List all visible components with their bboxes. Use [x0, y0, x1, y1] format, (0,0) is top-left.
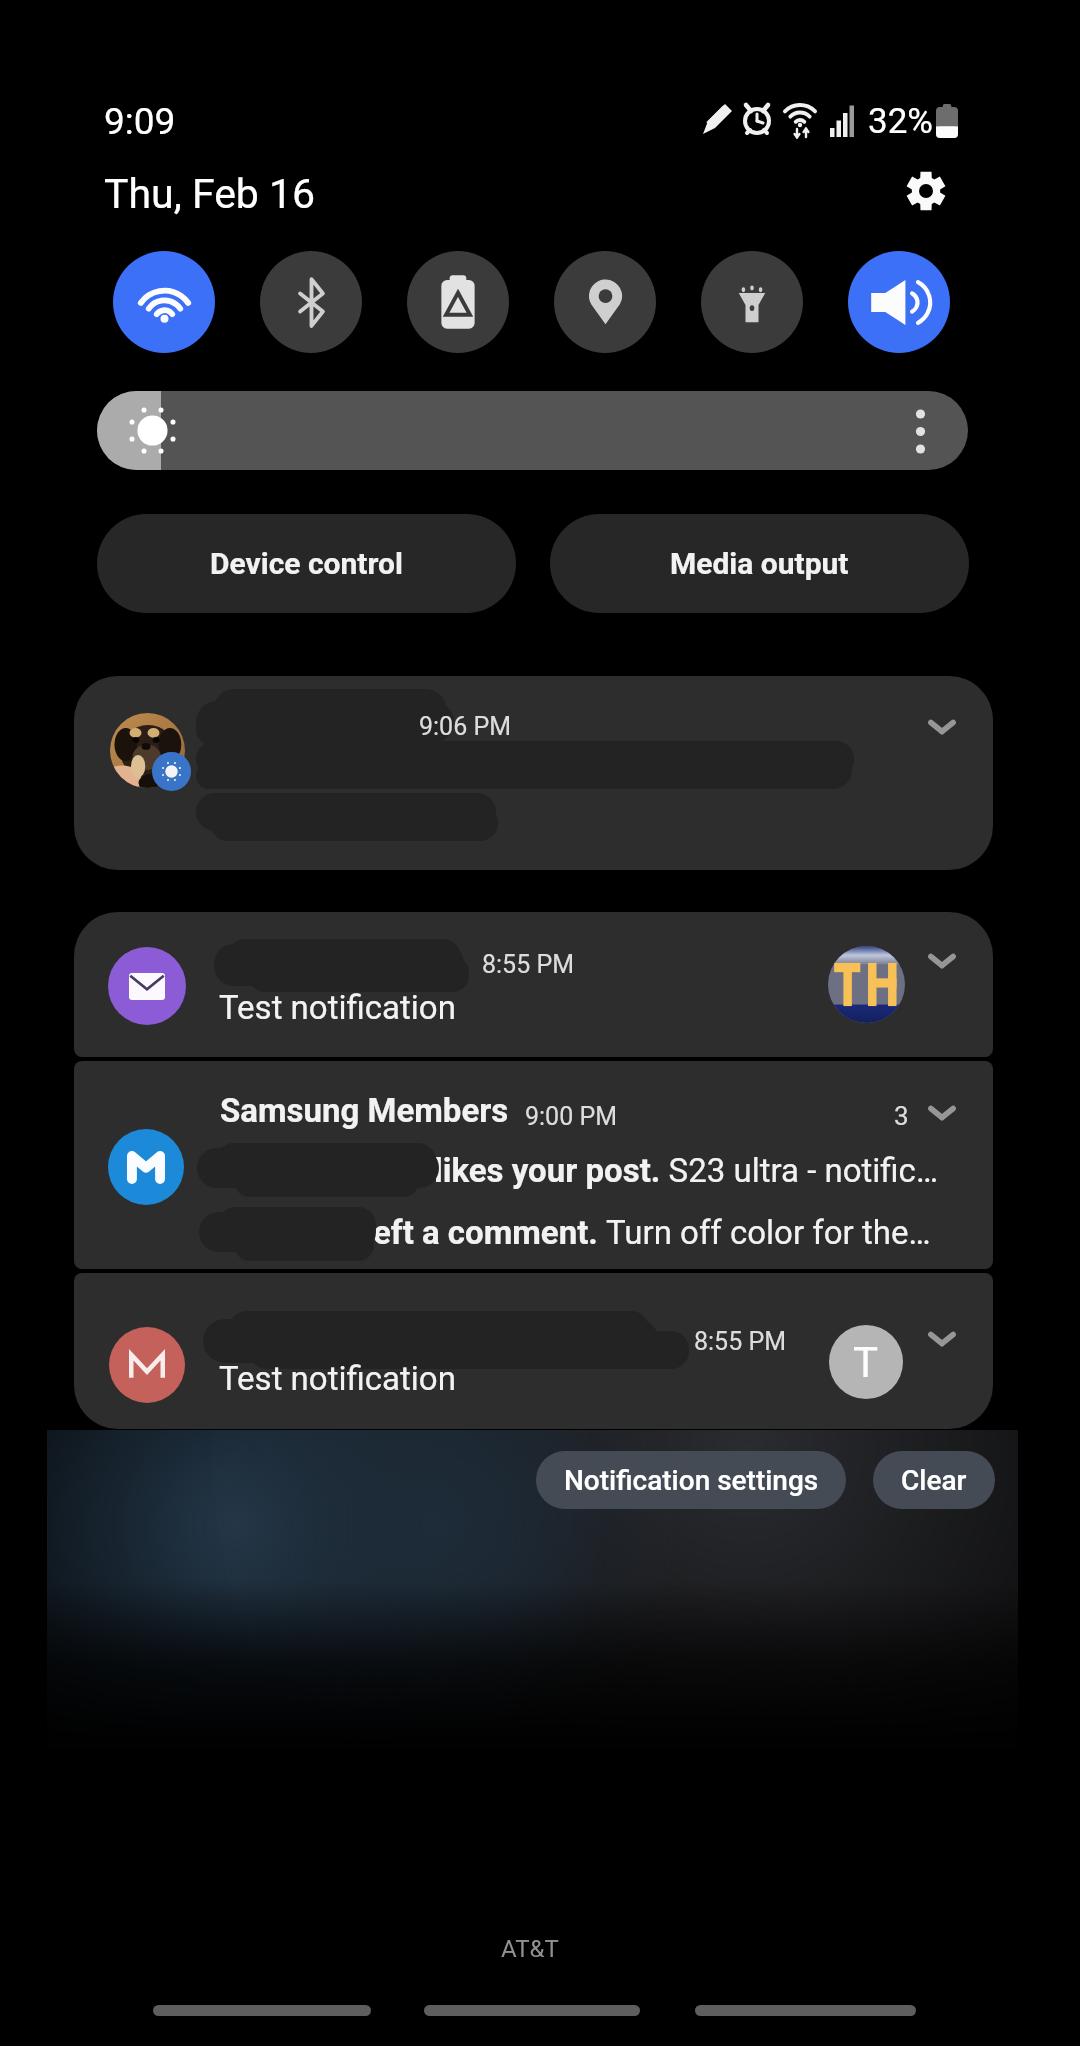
- button[interactable]: Home: [424, 2005, 640, 2016]
- staticText: 9:09: [104, 100, 176, 143]
- button[interactable]: Bluetooth: [260, 251, 362, 353]
- staticText: Clear: [901, 1464, 967, 1497]
- button[interactable]: Location: [554, 251, 656, 353]
- button[interactable]: Settings: [880, 145, 972, 237]
- button[interactable]: Data saver: [407, 251, 509, 353]
- button[interactable]: 8:55 PM: [74, 912, 993, 1057]
- staticText: AT&T: [501, 1935, 559, 1963]
- staticText: 3: [894, 1101, 909, 1131]
- button[interactable]: 8:55 PM: [74, 1273, 993, 1429]
- button[interactable]: Expand: [906, 696, 978, 758]
- button[interactable]: Clear: [873, 1451, 995, 1509]
- button[interactable]: Samsung Members: [74, 1061, 993, 1269]
- staticText: Thu, Feb 16: [104, 170, 316, 218]
- staticText: 9:00 PM: [525, 1102, 618, 1131]
- button[interactable]: Flashlight: [701, 251, 803, 353]
- button[interactable]: Notification settings: [536, 1451, 846, 1509]
- staticText: Media output: [670, 546, 849, 581]
- button[interactable]: 9:06 PM: [74, 676, 993, 870]
- staticText: 8:55 PM: [482, 950, 575, 979]
- staticText: Notification settings: [564, 1464, 819, 1497]
- staticText: 9:06 PM: [419, 712, 512, 741]
- button[interactable]: Expand: [906, 930, 978, 992]
- button[interactable]: Expand: [906, 1082, 978, 1144]
- button[interactable]: Recents: [153, 2005, 371, 2016]
- button[interactable]: Sound: [848, 251, 950, 353]
- staticText: Samsung Members: [220, 1091, 509, 1130]
- button[interactable]: Brightness: [97, 391, 968, 470]
- staticText: Device control: [210, 546, 403, 581]
- staticText: 8:55 PM: [694, 1327, 787, 1356]
- button[interactable]: Expand: [906, 1308, 978, 1370]
- staticText: T: [853, 1338, 879, 1387]
- staticText: Test notification: [219, 988, 456, 1027]
- button[interactable]: Device control: [97, 514, 516, 613]
- staticText: 32%: [868, 101, 933, 142]
- staticText: eft a comment. Turn off color for the…: [373, 1213, 931, 1252]
- button[interactable]: Media output: [550, 514, 969, 613]
- button[interactable]: Wi-Fi: [113, 251, 215, 353]
- staticText: likes your post. S23 ultra - notific…: [434, 1151, 938, 1190]
- staticText: Test notification: [219, 1359, 456, 1398]
- button[interactable]: Back: [695, 2005, 916, 2016]
